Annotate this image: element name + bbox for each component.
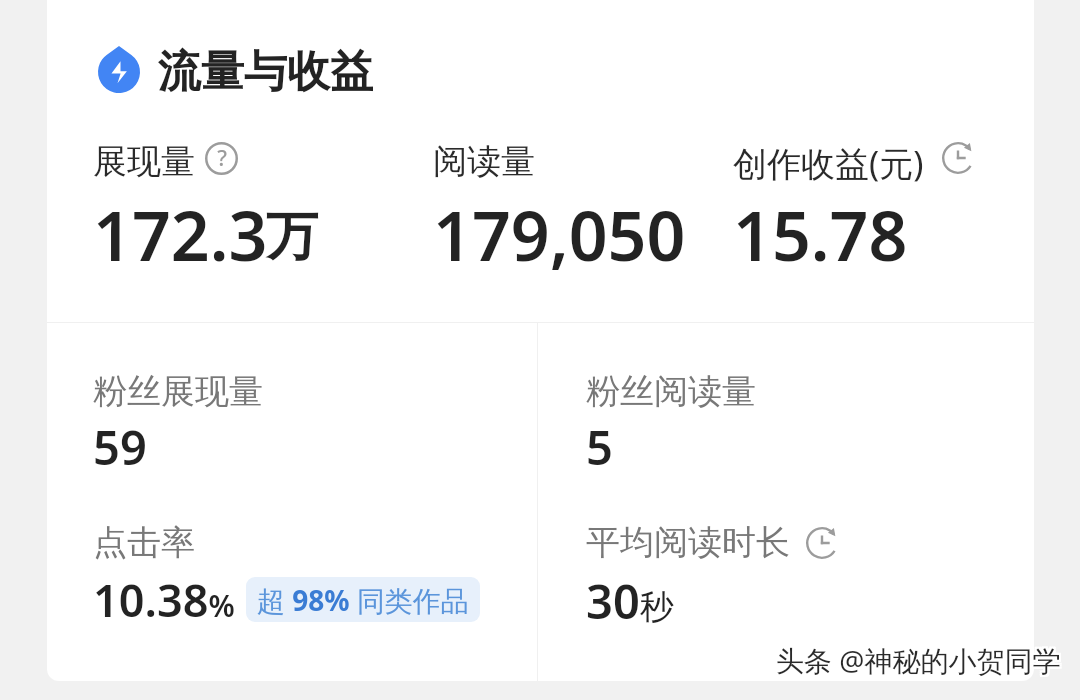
staticText: 点击率 xyxy=(93,521,195,564)
staticText: 头条 @神秘的小贺同学 xyxy=(774,643,1059,681)
staticText: 头条 @神秘的小贺同学 xyxy=(778,643,1063,681)
staticText: 10.38% xyxy=(93,569,235,630)
staticText: ? xyxy=(217,143,227,173)
staticText: 头条 @神秘的小贺同学 xyxy=(778,639,1063,677)
button[interactable]: Help xyxy=(205,142,238,175)
staticText: 头条 @神秘的小贺同学 xyxy=(774,641,1059,679)
button[interactable]: History xyxy=(806,527,838,559)
staticText: 流量与收益 xyxy=(158,45,373,93)
staticText: 万 xyxy=(266,204,318,270)
staticText: 179,050 xyxy=(433,188,686,281)
staticText: 超 98% 同类作品 xyxy=(257,581,469,619)
button[interactable]: History xyxy=(942,142,974,174)
staticText: 平均阅读时长 xyxy=(586,521,790,564)
staticText: 5 xyxy=(586,415,613,479)
staticText: 粉丝展现量 xyxy=(93,370,263,413)
staticText: 阅读量 xyxy=(433,140,535,183)
button[interactable]: 流量与收益 xyxy=(98,45,373,93)
staticText: 172.3 xyxy=(93,188,268,281)
staticText: 粉丝阅读量 xyxy=(586,370,756,413)
button[interactable]: 超 98% 同类作品 xyxy=(246,577,480,622)
staticText: 创作收益(元) xyxy=(733,140,924,186)
staticText: 头条 @神秘的小贺同学 xyxy=(778,641,1063,679)
staticText: 30秒 xyxy=(586,569,674,633)
staticText: 头条 @神秘的小贺同学 xyxy=(776,643,1061,681)
staticText: 展现量 xyxy=(93,140,195,183)
staticText: 头条 @神秘的小贺同学 xyxy=(776,641,1061,679)
staticText: 头条 @神秘的小贺同学 xyxy=(774,639,1059,677)
staticText: 头条 @神秘的小贺同学 xyxy=(776,639,1061,677)
staticText: 59 xyxy=(93,415,147,479)
staticText: 15.78 xyxy=(733,188,908,281)
